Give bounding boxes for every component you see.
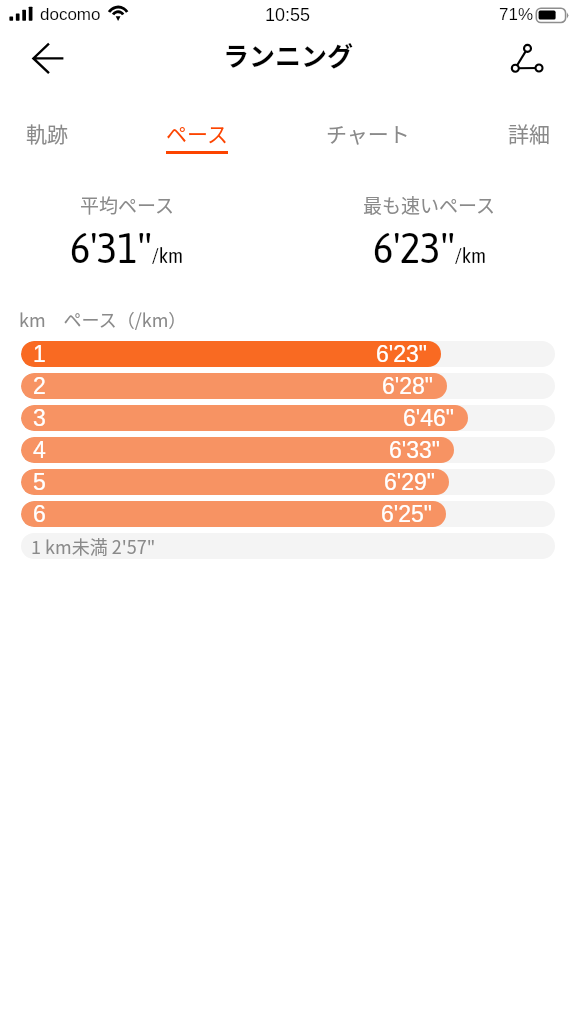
- button[interactable]: ペース: [166, 118, 228, 154]
- staticText: 1 km未満 2'57": [31, 533, 156, 559]
- staticText: 6: [33, 501, 46, 527]
- button[interactable]: 6: [21, 501, 555, 527]
- staticText: 6'29": [384, 469, 435, 495]
- button[interactable]: Share: [500, 36, 552, 88]
- button[interactable]: 1 km未満 2'57": [21, 533, 555, 559]
- button[interactable]: 5: [21, 469, 555, 495]
- staticText: 平均ペース: [80, 191, 175, 219]
- button[interactable]: 3: [21, 405, 555, 431]
- staticText: 6'33": [389, 437, 440, 463]
- button[interactable]: 2: [21, 373, 555, 399]
- button[interactable]: Back: [22, 36, 74, 88]
- staticText: ランニング: [223, 36, 354, 74]
- staticText: 1: [33, 341, 46, 367]
- staticText: docomo: [40, 5, 101, 24]
- staticText: 5: [33, 469, 46, 495]
- button[interactable]: 1: [21, 341, 555, 367]
- staticText: 6'46": [403, 405, 454, 431]
- staticText: 4: [33, 437, 46, 463]
- staticText: 6'25": [381, 501, 432, 527]
- staticText: 2: [33, 373, 46, 399]
- staticText: ペース: [166, 118, 228, 148]
- staticText: 3: [33, 405, 46, 431]
- button[interactable]: 軌跡: [26, 118, 68, 154]
- staticText: km ペース（/km）: [19, 306, 187, 332]
- staticText: 71%: [499, 5, 534, 24]
- staticText: 10:55: [265, 5, 311, 25]
- staticText: チャート: [326, 118, 410, 148]
- staticText: 詳細: [508, 118, 550, 148]
- staticText: 6'31"/km: [70, 223, 184, 272]
- button[interactable]: 詳細: [508, 118, 550, 154]
- button[interactable]: チャート: [326, 118, 410, 154]
- staticText: 軌跡: [26, 118, 68, 148]
- staticText: 6'28": [382, 373, 433, 399]
- staticText: 6'23": [376, 341, 427, 367]
- button[interactable]: 4: [21, 437, 555, 463]
- staticText: 6'23"/km: [373, 223, 487, 272]
- staticText: 最も速いペース: [363, 191, 496, 219]
